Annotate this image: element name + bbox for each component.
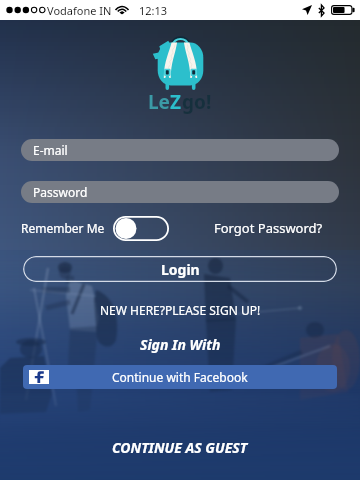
staticText: E-mail: [33, 142, 68, 158]
button[interactable]: NEW HERE?PLEASE SIGN UP!: [100, 302, 261, 318]
button[interactable]: E-mail: [21, 139, 339, 161]
staticText: Remember Me: [21, 220, 105, 236]
staticText: Le: [148, 89, 170, 115]
button[interactable]: Remember Me: [21, 214, 169, 242]
staticText: Vodafone IN: [47, 3, 112, 18]
staticText: go!: [182, 89, 212, 115]
button[interactable]: Password: [21, 181, 339, 203]
staticText: 12:13: [139, 3, 168, 18]
button[interactable]: Login: [23, 256, 337, 282]
staticText: Z: [170, 89, 182, 115]
button[interactable]: Forgot Password?: [214, 214, 323, 242]
button[interactable]: CONTINUE AS GUEST: [112, 438, 248, 457]
staticText: Password: [33, 184, 88, 200]
staticText: Sign In With: [140, 335, 221, 354]
staticText: Forgot Password?: [214, 219, 323, 237]
staticText: Continue with Facebook: [112, 369, 248, 385]
button[interactable]: Continue with Facebook: [23, 365, 337, 389]
staticText: Login: [161, 260, 200, 279]
